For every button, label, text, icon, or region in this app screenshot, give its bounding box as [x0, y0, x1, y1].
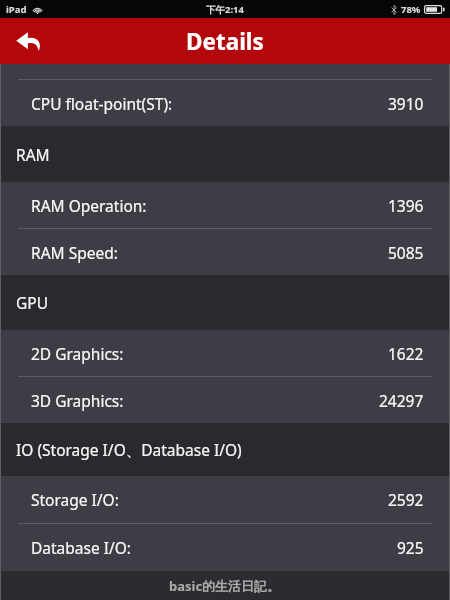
- staticText: 78%: [401, 3, 421, 16]
- staticText: Database I/O:: [31, 537, 132, 558]
- button[interactable]: Back: [8, 20, 50, 62]
- staticText: RAM Operation:: [31, 195, 147, 216]
- staticText: Storage I/O:: [31, 489, 119, 510]
- button[interactable]: Storage I/O:: [0, 476, 450, 523]
- staticText: basic的生活日記。: [169, 577, 281, 595]
- button[interactable]: CPU float-point(ST):: [0, 80, 450, 126]
- staticText: 下午2:14: [206, 3, 244, 16]
- staticText: CPU float-point(ST):: [31, 93, 173, 114]
- staticText: 3910: [388, 93, 424, 114]
- staticText: 1622: [388, 343, 424, 364]
- button[interactable]: RAM Operation:: [0, 182, 450, 228]
- button[interactable]: Database I/O:: [0, 524, 450, 571]
- staticText: 5085: [388, 242, 424, 263]
- staticText: GPU: [16, 292, 48, 313]
- staticText: IO (Storage I/O、Database I/O): [16, 439, 242, 460]
- staticText: 1396: [388, 195, 424, 216]
- staticText: iPad: [6, 3, 27, 16]
- staticText: 3D Graphics:: [31, 390, 124, 411]
- staticText: RAM: [16, 144, 50, 165]
- button[interactable]: 2D Graphics:: [0, 330, 450, 376]
- button[interactable]: 3D Graphics:: [0, 377, 450, 423]
- staticText: 925: [397, 537, 424, 558]
- staticText: 24297: [379, 390, 424, 411]
- staticText: RAM Speed:: [31, 242, 118, 263]
- staticText: 2D Graphics:: [31, 343, 124, 364]
- staticText: 2592: [388, 489, 424, 510]
- staticText: Details: [186, 26, 264, 57]
- button[interactable]: RAM Speed:: [0, 229, 450, 275]
